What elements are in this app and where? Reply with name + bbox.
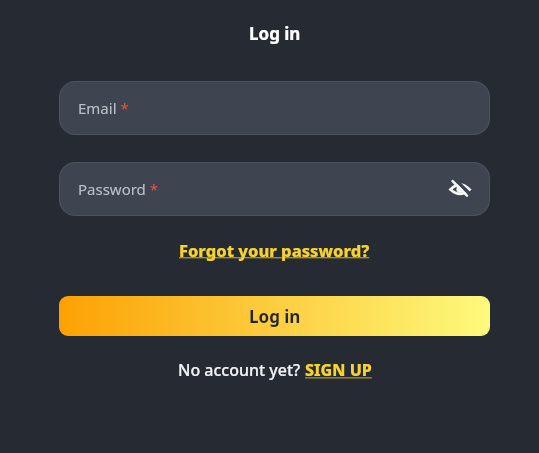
button[interactable]: Log in xyxy=(59,296,490,336)
staticText: No account yet? xyxy=(178,359,305,381)
button[interactable]: Password * xyxy=(59,162,490,216)
button[interactable]: Forgot your password? xyxy=(179,239,370,261)
button[interactable]: SIGN UP xyxy=(305,359,372,381)
staticText: Password * xyxy=(78,179,159,199)
staticText: Log in xyxy=(249,22,301,45)
staticText: Email * xyxy=(78,98,129,118)
button[interactable] xyxy=(448,177,472,201)
staticText: Log in xyxy=(249,305,301,328)
button[interactable]: Email * xyxy=(59,81,490,135)
